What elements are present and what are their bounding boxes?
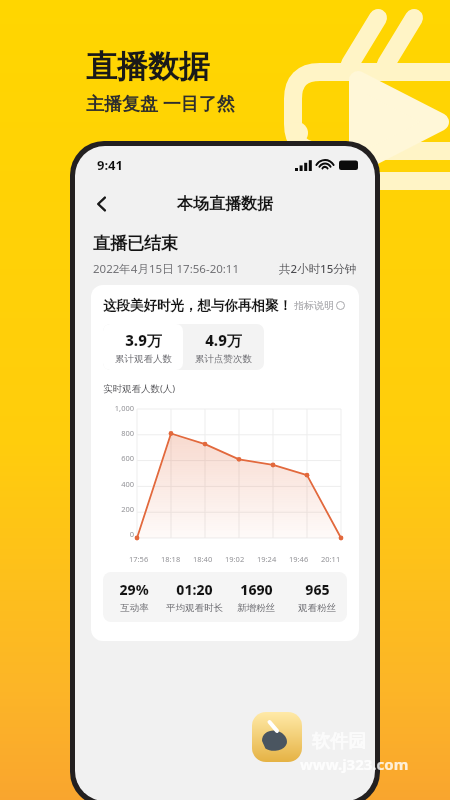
button[interactable]: 29% [103, 572, 164, 622]
staticText: 直播已结束 [93, 233, 178, 254]
button[interactable]: 1690 [225, 572, 286, 622]
staticText: 实时观看人数(人) [103, 382, 176, 395]
staticText: 新增粉丝 [237, 602, 275, 614]
staticText: 3.9万 [125, 330, 162, 350]
staticText: 直播数据 [86, 47, 210, 86]
button[interactable]: 指标说明 [292, 297, 347, 314]
staticText: 01:20 [176, 580, 213, 599]
staticText: 400 [121, 479, 134, 489]
staticText: 19:02 [225, 554, 245, 564]
staticText: 本场直播数据 [177, 194, 273, 214]
staticText: 观看粉丝 [298, 602, 336, 614]
staticText: 指标说明 [294, 299, 334, 312]
staticText: 2022年4月15日 17:56-20:11 [93, 261, 240, 277]
staticText: 互动率 [120, 602, 149, 614]
staticText: 200 [121, 504, 134, 514]
staticText: 累计点赞次数 [195, 353, 252, 365]
button[interactable]: 4.9万 [183, 324, 264, 370]
staticText: 600 [121, 453, 134, 463]
staticText: 0 [129, 529, 134, 539]
button[interactable]: Back [85, 187, 119, 221]
staticText: 平均观看时长 [166, 602, 223, 614]
staticText: 17:56 [129, 554, 149, 564]
staticText: 18:40 [193, 554, 213, 564]
staticText: www.j323.com [300, 754, 409, 774]
staticText: 这段美好时光，想与你再相聚！ [103, 297, 292, 314]
staticText: 1690 [240, 580, 273, 599]
staticText: 18:18 [161, 554, 181, 564]
staticText: 19:46 [289, 554, 309, 564]
staticText: 20:11 [321, 554, 341, 564]
button[interactable]: 965 [286, 572, 347, 622]
staticText: 主播复盘 一目了然 [86, 91, 235, 116]
staticText: 965 [305, 580, 330, 599]
staticText: 4.9万 [205, 330, 242, 350]
staticText: 软件园 [312, 730, 366, 753]
staticText: 800 [121, 428, 134, 438]
staticText: 1,000 [114, 403, 134, 413]
staticText: 9:41 [97, 156, 123, 174]
staticText: 29% [119, 580, 149, 599]
button[interactable]: 01:20 [164, 572, 225, 622]
button[interactable]: 3.9万 [103, 324, 183, 370]
staticText: 19:24 [257, 554, 277, 564]
staticText: 共2小时15分钟 [279, 261, 357, 277]
staticText: 累计观看人数 [115, 353, 172, 365]
